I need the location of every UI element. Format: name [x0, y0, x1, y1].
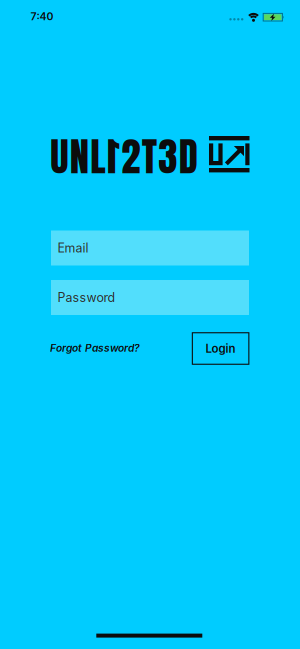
- staticText: 2T3D: [121, 128, 198, 186]
- staticText: Email: [57, 240, 88, 255]
- staticText: Forgot Password?: [50, 342, 140, 354]
- staticText: Password: [57, 290, 115, 305]
- textField[interactable]: Password: [57, 290, 249, 305]
- staticText: 1: [107, 128, 120, 186]
- button[interactable]: Forgot Password?: [50, 342, 140, 354]
- staticText: Login: [206, 342, 236, 355]
- button[interactable]: Login: [192, 333, 249, 364]
- textField[interactable]: Email: [57, 240, 249, 255]
- staticText: 7:40: [30, 10, 53, 23]
- staticText: UNL: [50, 128, 105, 186]
